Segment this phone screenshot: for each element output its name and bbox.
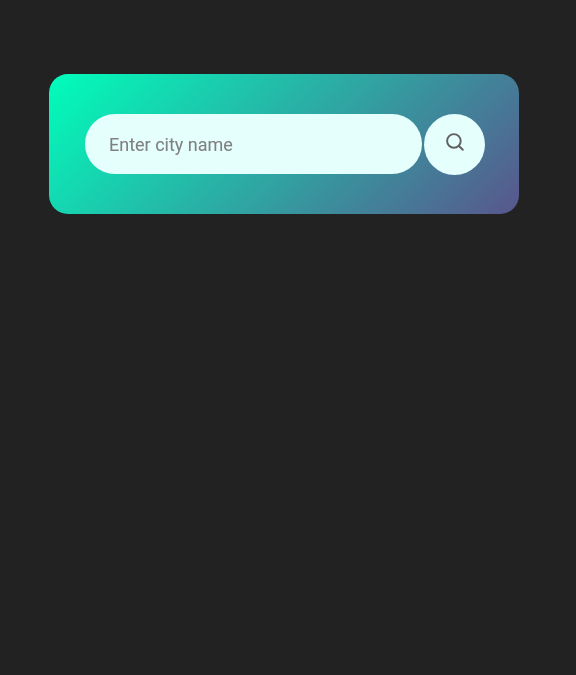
button[interactable]: Search bbox=[424, 114, 485, 175]
staticText: Enter city name bbox=[109, 134, 233, 155]
button[interactable]: Enter city name bbox=[85, 114, 422, 174]
